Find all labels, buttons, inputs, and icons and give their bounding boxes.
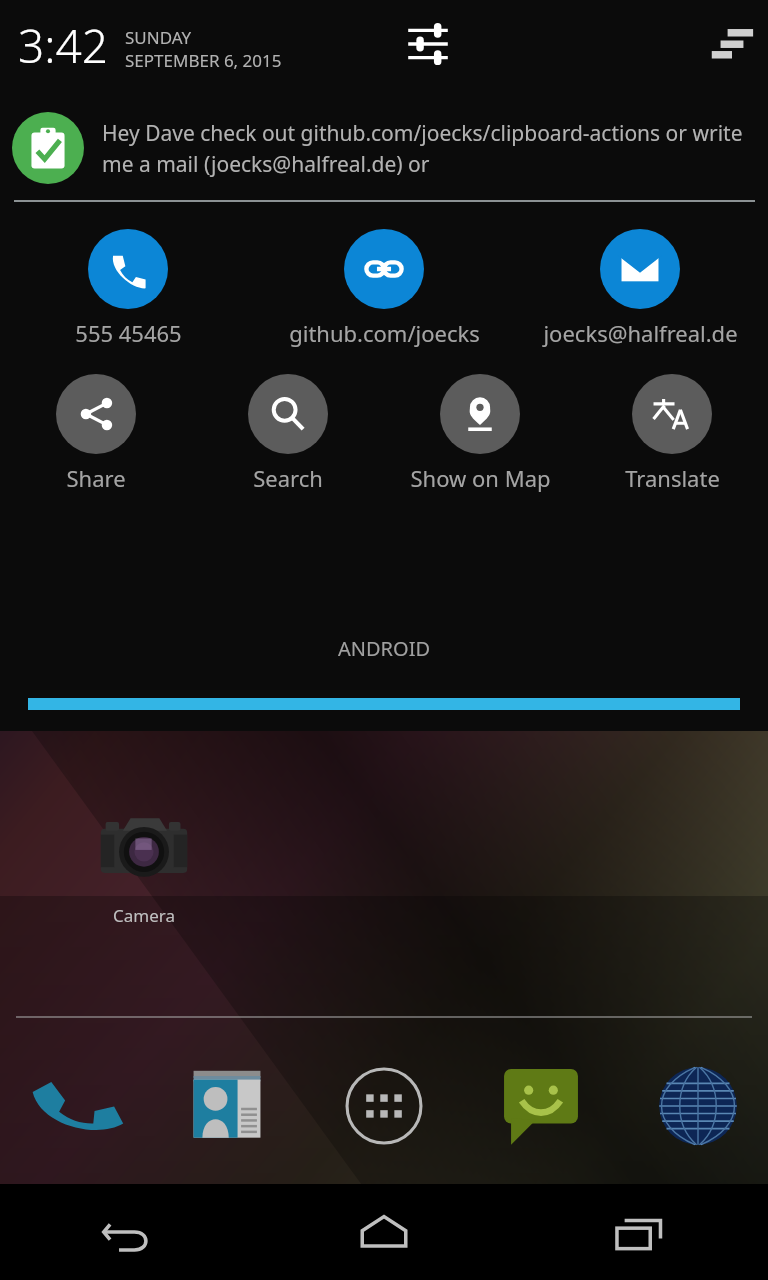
- staticText: 555 45465: [75, 318, 182, 348]
- button[interactable]: github.com/joecks: [256, 229, 512, 348]
- button[interactable]: Search: [192, 374, 384, 493]
- button[interactable]: Phone: [14, 1050, 126, 1162]
- button[interactable]: Show on Map: [384, 374, 576, 493]
- staticText: SUNDAY: [125, 26, 192, 49]
- staticText: Translate: [625, 463, 720, 493]
- button[interactable]: Translate: [576, 374, 768, 493]
- button[interactable]: Share: [0, 374, 192, 493]
- button[interactable]: Clear all notifications: [704, 16, 760, 72]
- staticText: Camera: [113, 904, 175, 927]
- button[interactable]: Apps: [328, 1050, 440, 1162]
- button[interactable]: Settings: [400, 16, 456, 72]
- staticText: 3:42: [18, 14, 109, 77]
- staticText: Share: [66, 463, 126, 493]
- button[interactable]: Browser: [642, 1050, 754, 1162]
- button[interactable]: Camera: [80, 800, 208, 927]
- button[interactable]: People: [171, 1050, 283, 1162]
- staticText: github.com/joecks: [289, 318, 480, 348]
- staticText: Show on Map: [410, 463, 551, 493]
- staticText: SEPTEMBER 6, 2015: [125, 49, 282, 72]
- button[interactable]: Hey Dave check out github.com/joecks/cli…: [0, 96, 768, 200]
- button[interactable]: Back: [0, 1184, 256, 1280]
- button[interactable]: Recent apps: [512, 1184, 768, 1280]
- button[interactable]: Home: [256, 1184, 512, 1280]
- button[interactable]: Messaging: [485, 1050, 597, 1162]
- staticText: ANDROID: [0, 635, 768, 662]
- button[interactable]: joecks@halfreal.de: [512, 229, 768, 348]
- staticText: Hey Dave check out github.com/joecks/cli…: [102, 119, 752, 178]
- staticText: Search: [253, 463, 323, 493]
- staticText: joecks@halfreal.de: [543, 318, 738, 348]
- button[interactable]: 555 45465: [0, 229, 256, 348]
